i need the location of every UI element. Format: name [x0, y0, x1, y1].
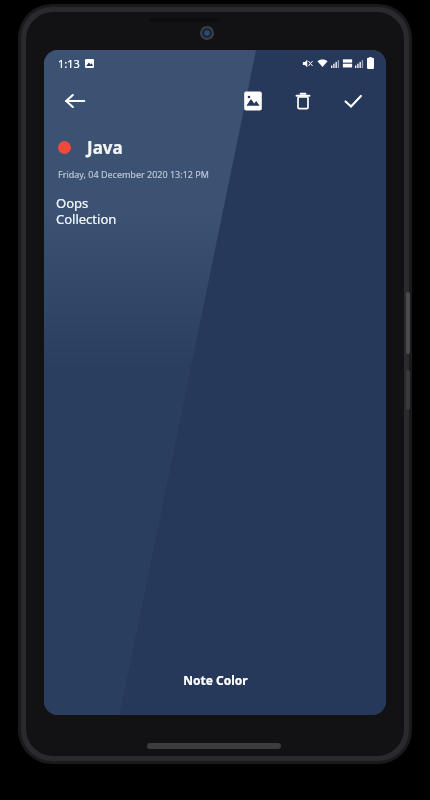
staticText: 1:13 [58, 56, 80, 71]
button[interactable]: Note Color [44, 657, 386, 703]
button[interactable]: Save [332, 80, 374, 122]
button[interactable]: Add image [232, 80, 274, 122]
button[interactable]: Oops Collection [56, 194, 117, 227]
staticText: Note Color [183, 672, 248, 688]
button[interactable]: Back [54, 80, 96, 122]
button[interactable]: Java [87, 136, 123, 159]
staticText: Friday, 04 December 2020 13:12 PM [58, 168, 209, 180]
button[interactable]: Delete [282, 80, 324, 122]
